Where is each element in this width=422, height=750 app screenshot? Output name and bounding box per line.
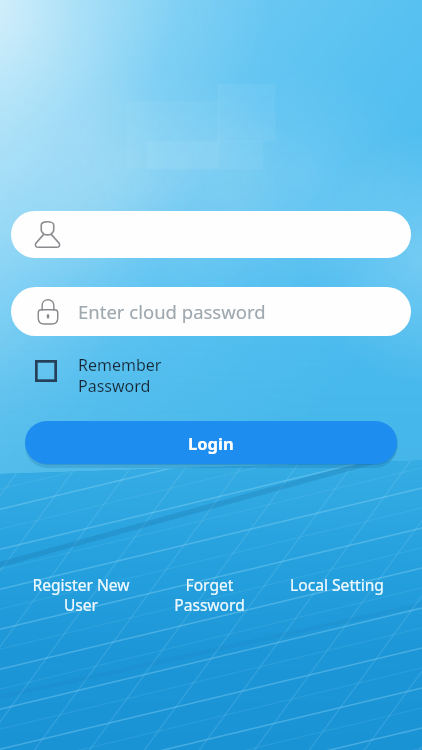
other: Username: [33, 220, 62, 249]
staticText: Register New User: [32, 574, 130, 616]
other: Password: [33, 297, 63, 327]
button[interactable]: Register New User: [17, 574, 145, 616]
button[interactable]: Username: [11, 211, 411, 258]
staticText: Login: [188, 432, 234, 454]
button[interactable]: Forget Password: [145, 574, 273, 616]
button[interactable]: Login: [25, 421, 397, 464]
staticText: Enter cloud password: [78, 299, 266, 324]
button[interactable]: Remember Password: [35, 354, 162, 397]
staticText: Forget Password: [174, 574, 245, 616]
button[interactable]: Local Setting: [273, 574, 401, 595]
button[interactable]: Password: [11, 287, 411, 336]
staticText: Local Setting: [290, 574, 384, 595]
staticText: Remember Password: [78, 354, 162, 397]
